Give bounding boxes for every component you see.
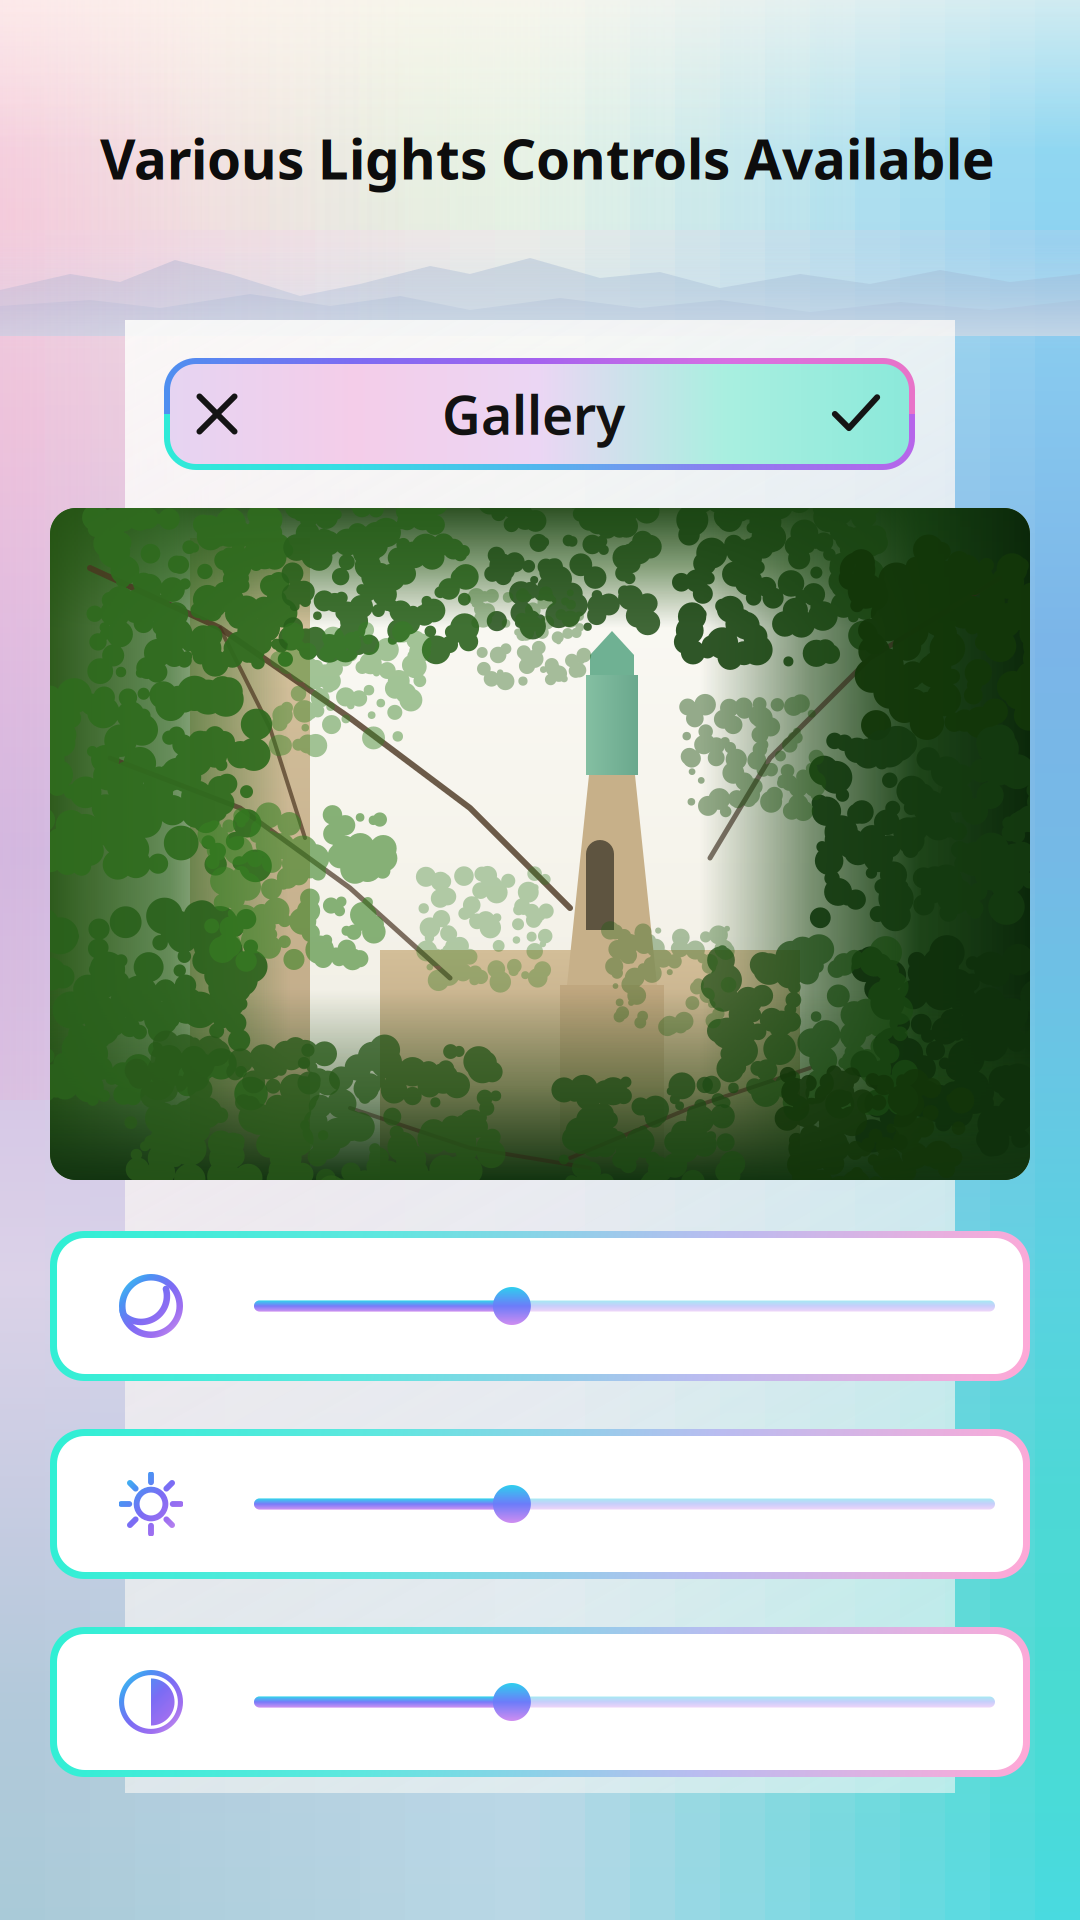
button[interactable]: Brightness [50, 1429, 1030, 1579]
button[interactable]: Contrast [50, 1627, 1030, 1777]
staticText: Gallery [442, 379, 625, 449]
button[interactable]: Close [164, 358, 270, 470]
button[interactable]: Done [797, 358, 915, 470]
staticText: Various Lights Controls Available [100, 122, 995, 195]
button[interactable]: Saturation [50, 1231, 1030, 1381]
